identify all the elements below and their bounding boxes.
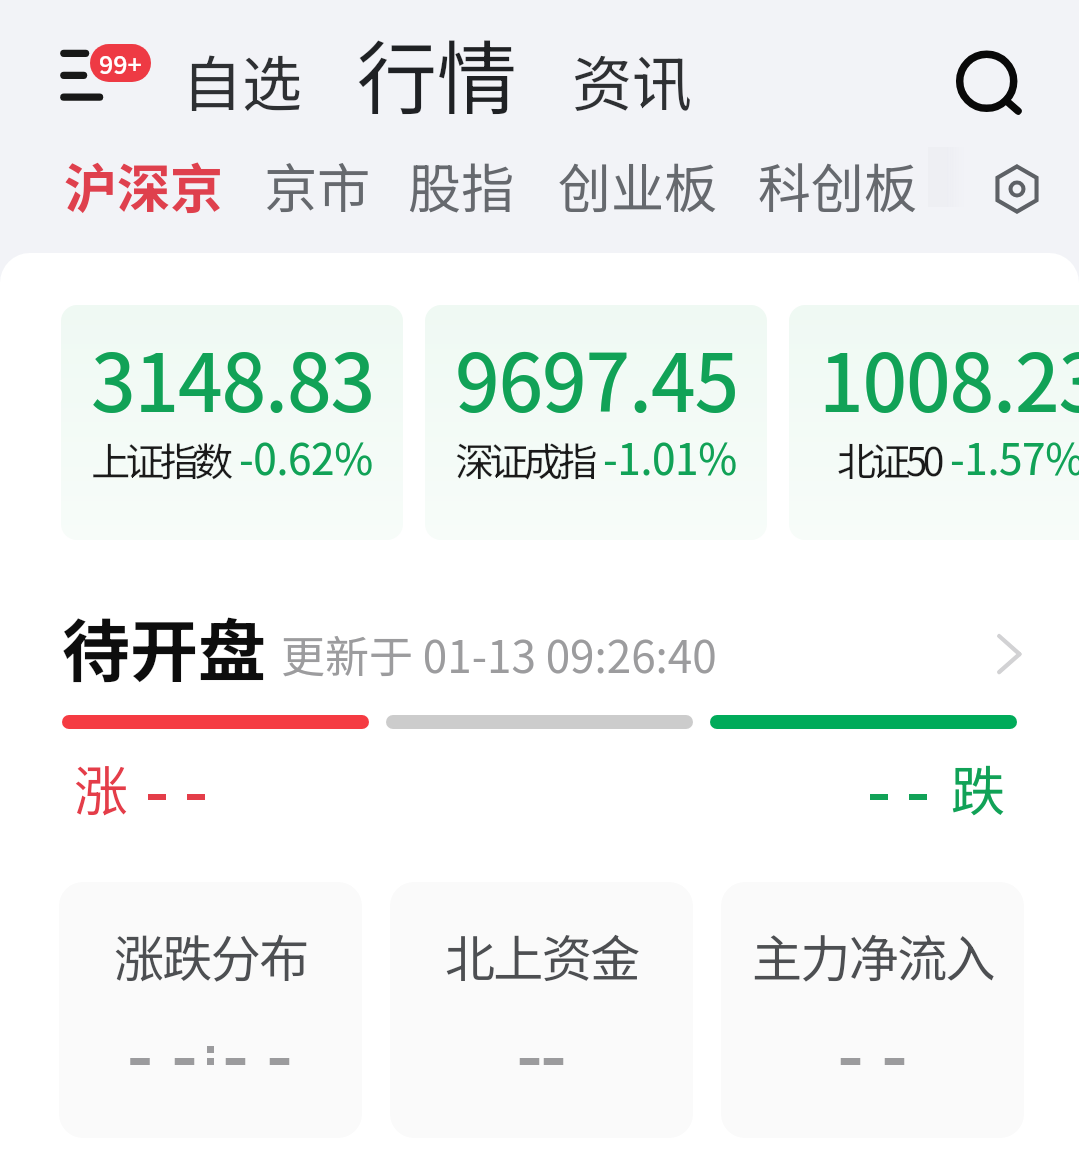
staticText: 京市: [264, 147, 370, 224]
staticText: 主力净流入: [752, 919, 994, 991]
staticText: 3148.83: [91, 320, 374, 434]
staticText: 创业板: [558, 147, 717, 224]
staticText: 待开盘: [62, 597, 267, 695]
staticText: -0.62%: [239, 426, 373, 487]
button[interactable]: 主力净流入: [721, 882, 1024, 1138]
button[interactable]: 9697.45: [425, 305, 767, 540]
staticText: 北上资金: [445, 919, 639, 991]
staticText: 深证成指: [455, 431, 593, 487]
staticText: -1.57%: [950, 426, 1079, 487]
staticText: 涨跌分布: [114, 919, 308, 991]
staticText: -1.01%: [603, 426, 737, 487]
button[interactable]: 沪深京: [64, 137, 223, 234]
button[interactable]: 创业板: [558, 137, 717, 234]
staticText: 沪深京: [64, 147, 223, 224]
staticText: 行情: [357, 15, 517, 131]
button[interactable]: 自选: [182, 36, 302, 123]
button[interactable]: 北上资金: [390, 882, 693, 1138]
button[interactable]: 1008.23: [789, 305, 1079, 540]
staticText: 1008.23: [819, 320, 1079, 434]
button[interactable]: 科创板: [758, 137, 917, 234]
staticText: 99+: [99, 45, 142, 81]
button[interactable]: Search: [947, 42, 1027, 122]
staticText: 跌: [951, 748, 1005, 818]
staticText: 资讯: [572, 36, 692, 123]
button[interactable]: 涨跌分布: [59, 882, 362, 1138]
button[interactable]: 股指: [408, 137, 514, 234]
button[interactable]: 待开盘: [0, 593, 1079, 693]
staticText: 9697.45: [455, 320, 738, 434]
staticText: 更新于 01-13 09:26:40: [281, 622, 717, 686]
button[interactable]: 资讯: [572, 36, 692, 123]
button[interactable]: 京市: [264, 137, 370, 234]
button[interactable]: 3148.83: [61, 305, 403, 540]
button[interactable]: Menu: [44, 34, 164, 114]
staticText: 上证指数: [91, 431, 229, 487]
staticText: 自选: [182, 36, 302, 123]
staticText: 科创板: [758, 147, 917, 224]
staticText: 股指: [408, 147, 514, 224]
staticText: 涨: [74, 748, 128, 818]
button[interactable]: Settings: [986, 158, 1048, 220]
staticText: 北证50: [837, 431, 940, 487]
button[interactable]: 行情: [357, 15, 517, 131]
